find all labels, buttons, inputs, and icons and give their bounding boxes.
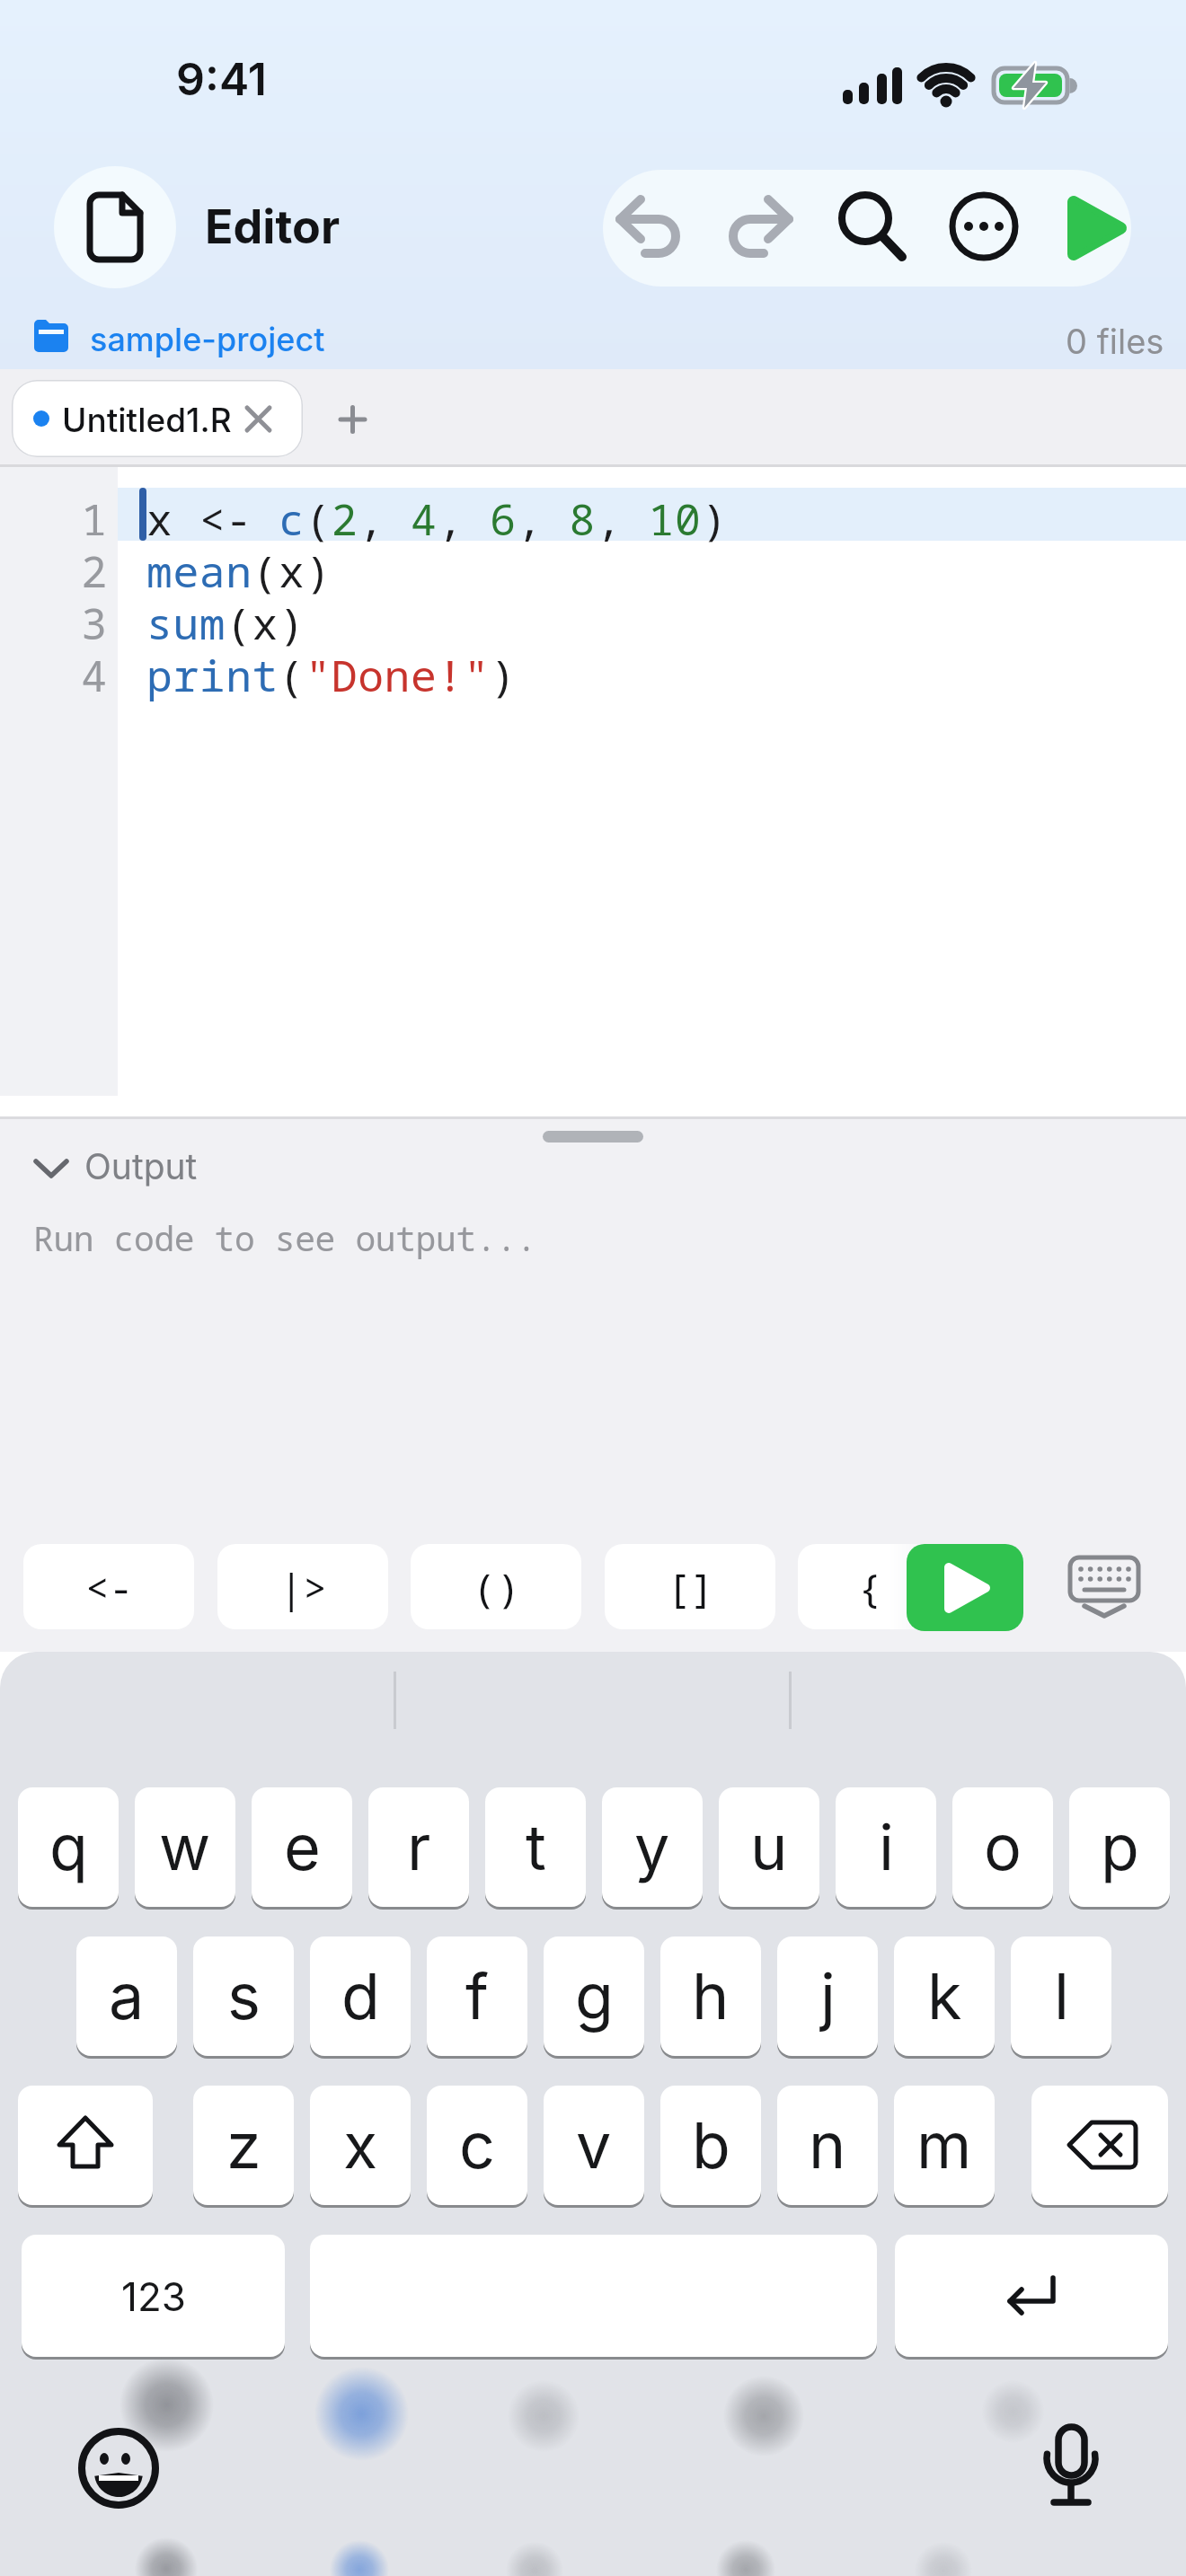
staticText: 123 bbox=[121, 2272, 186, 2320]
button[interactable] bbox=[310, 2235, 877, 2357]
button[interactable]: e bbox=[252, 1787, 352, 1907]
staticText: m bbox=[916, 2107, 972, 2183]
button[interactable]: a bbox=[76, 1936, 177, 2056]
staticText: z bbox=[226, 2107, 261, 2183]
staticText: 9:41 bbox=[176, 52, 267, 106]
staticText: q bbox=[49, 1809, 88, 1885]
button[interactable] bbox=[907, 1544, 1023, 1631]
button[interactable] bbox=[79, 2427, 162, 2510]
staticText: l bbox=[1054, 1958, 1069, 2034]
staticText: x bbox=[343, 2107, 378, 2183]
button[interactable]: t bbox=[485, 1787, 586, 1907]
button[interactable]: [] bbox=[605, 1544, 775, 1629]
button[interactable] bbox=[895, 2235, 1168, 2357]
staticText: k bbox=[927, 1958, 962, 2034]
button[interactable]: |> bbox=[217, 1544, 388, 1629]
button[interactable]: g bbox=[544, 1936, 644, 2056]
button[interactable]: p bbox=[1069, 1787, 1170, 1907]
button[interactable]: c bbox=[427, 2086, 527, 2205]
staticText: Run code to see output... bbox=[33, 1214, 537, 1261]
staticText: v bbox=[576, 2107, 612, 2183]
button[interactable] bbox=[818, 170, 916, 287]
staticText: g bbox=[575, 1958, 614, 2034]
button[interactable]: d bbox=[310, 1936, 411, 2056]
staticText: Untitled1.R bbox=[62, 400, 232, 440]
staticText: n bbox=[809, 2107, 846, 2183]
button[interactable]: z bbox=[193, 2086, 294, 2205]
button[interactable]: r bbox=[368, 1787, 469, 1907]
button[interactable]: b bbox=[660, 2086, 761, 2205]
button[interactable]: m bbox=[894, 2086, 995, 2205]
staticText: p bbox=[1101, 1809, 1139, 1885]
staticText: o bbox=[984, 1809, 1022, 1885]
staticText: Output bbox=[84, 1145, 198, 1187]
staticText: { bbox=[858, 1560, 882, 1614]
button[interactable]: y bbox=[602, 1787, 703, 1907]
staticText: 4 bbox=[0, 646, 107, 2576]
button[interactable]: q bbox=[18, 1787, 119, 1907]
button[interactable] bbox=[1033, 2420, 1111, 2510]
button[interactable]: l bbox=[1011, 1936, 1111, 2056]
button[interactable]: o bbox=[952, 1787, 1053, 1907]
button[interactable] bbox=[1042, 170, 1150, 287]
staticText: Editor bbox=[205, 198, 341, 255]
button[interactable]: k bbox=[894, 1936, 995, 2056]
button[interactable]: f bbox=[427, 1936, 527, 2056]
staticText: t bbox=[526, 1809, 546, 1885]
button[interactable]: u bbox=[719, 1787, 819, 1907]
button[interactable]: () bbox=[411, 1544, 581, 1629]
staticText: u bbox=[750, 1809, 788, 1885]
button[interactable]: n bbox=[777, 2086, 878, 2205]
staticText: j bbox=[820, 1958, 836, 2034]
staticText: s bbox=[227, 1958, 261, 2034]
staticText: y bbox=[634, 1809, 670, 1885]
button[interactable]: Untitled1.R bbox=[12, 380, 303, 457]
staticText: 3 bbox=[0, 594, 107, 2576]
button[interactable]: { bbox=[798, 1544, 942, 1629]
staticText: 0 files bbox=[1066, 321, 1164, 362]
button[interactable]: w bbox=[135, 1787, 235, 1907]
button[interactable] bbox=[323, 391, 381, 448]
staticText: h bbox=[692, 1958, 730, 2034]
staticText: b bbox=[692, 2107, 730, 2183]
button[interactable]: h bbox=[660, 1936, 761, 2056]
staticText: sample-project bbox=[90, 320, 325, 359]
button[interactable]: v bbox=[544, 2086, 644, 2205]
staticText: i bbox=[879, 1809, 894, 1885]
button[interactable]: sample-project bbox=[27, 305, 404, 365]
button[interactable] bbox=[934, 170, 1033, 287]
staticText: w bbox=[159, 1809, 211, 1885]
staticText: 2 bbox=[0, 542, 107, 2576]
staticText: d bbox=[341, 1958, 380, 2034]
staticText: <- bbox=[85, 1560, 133, 1614]
staticText: print("Done!") bbox=[146, 646, 517, 704]
button[interactable]: s bbox=[193, 1936, 294, 2056]
staticText: [] bbox=[667, 1560, 714, 1614]
button[interactable]: Output bbox=[18, 1145, 252, 1199]
button[interactable] bbox=[708, 170, 810, 287]
staticText: () bbox=[473, 1560, 520, 1614]
staticText: 1 bbox=[0, 490, 107, 2576]
button[interactable]: i bbox=[836, 1787, 936, 1907]
staticText: x <- c(2, 4, 6, 8, 10) bbox=[146, 490, 728, 548]
staticText: a bbox=[109, 1958, 145, 2034]
button[interactable]: <- bbox=[23, 1544, 194, 1629]
staticText: mean(x) bbox=[146, 542, 332, 600]
button[interactable] bbox=[1060, 1549, 1150, 1626]
button[interactable] bbox=[18, 2086, 153, 2205]
button[interactable] bbox=[1031, 2086, 1168, 2205]
button[interactable]: x bbox=[310, 2086, 411, 2205]
staticText: |> bbox=[279, 1560, 327, 1614]
staticText: c bbox=[459, 2107, 495, 2183]
button[interactable]: j bbox=[777, 1936, 878, 2056]
staticText: e bbox=[284, 1809, 321, 1885]
staticText: r bbox=[407, 1809, 431, 1885]
button[interactable] bbox=[54, 166, 176, 288]
staticText: sum(x) bbox=[146, 594, 305, 652]
button[interactable] bbox=[598, 170, 701, 287]
staticText: f bbox=[465, 1958, 489, 2034]
button[interactable]: 123 bbox=[22, 2235, 285, 2357]
